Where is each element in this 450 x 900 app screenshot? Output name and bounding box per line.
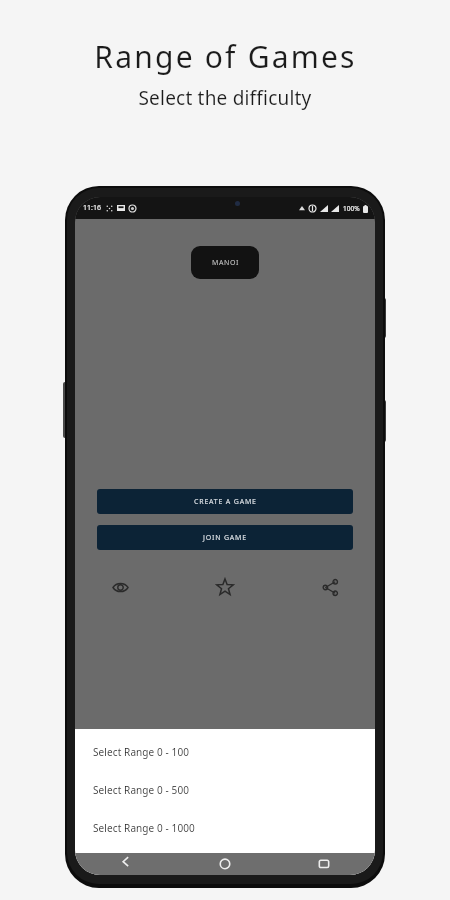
button[interactable]: CREATE A GAME	[97, 489, 353, 514]
staticText: Range of Games	[94, 36, 357, 77]
button[interactable]: JOIN GAME	[97, 525, 353, 550]
button[interactable]: Select Range 0 - 1000	[75, 809, 375, 847]
staticText: 100%	[343, 204, 360, 213]
staticText: Select Range 0 - 500	[93, 783, 190, 797]
button[interactable]: Back	[117, 853, 135, 867]
button[interactable]: Recents	[315, 853, 333, 867]
button[interactable]: MANOI	[191, 246, 259, 279]
staticText: CREATE A GAME	[194, 497, 257, 507]
button[interactable]: Watch a game	[105, 572, 135, 602]
button[interactable]: Select Range 0 - 500	[75, 771, 375, 809]
staticText: Select Range 0 - 100	[93, 745, 190, 759]
button[interactable]: Select Range 0 - 100	[75, 733, 375, 771]
staticText: Select the difficulty	[138, 85, 312, 111]
button[interactable]: Favorites	[210, 572, 240, 602]
staticText: Select Range 0 - 1000	[93, 821, 195, 835]
staticText: JOIN GAME	[203, 533, 247, 543]
button[interactable]: Share	[315, 572, 345, 602]
staticText: 11:16	[83, 203, 101, 213]
staticText: MANOI	[212, 258, 239, 268]
button[interactable]: Home	[216, 853, 234, 867]
